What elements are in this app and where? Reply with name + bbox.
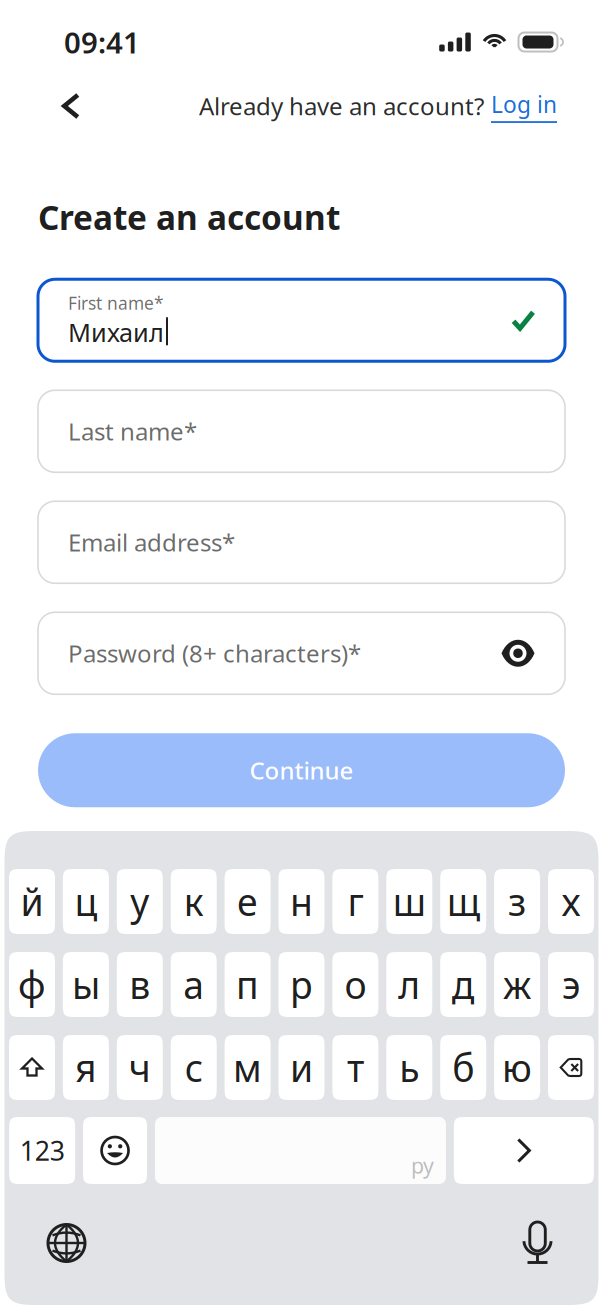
staticText: т [347, 1043, 364, 1092]
staticText: и [290, 1043, 313, 1092]
button[interactable]: ю [494, 1035, 540, 1100]
button[interactable]: л [386, 952, 432, 1017]
staticText: ру [411, 1151, 434, 1180]
button[interactable]: а [171, 952, 217, 1017]
button[interactable]: ж [494, 952, 540, 1017]
staticText: ж [503, 960, 531, 1009]
staticText: Password (8+ characters)* [68, 637, 361, 669]
button[interactable]: д [440, 952, 486, 1017]
staticText: Email address* [68, 526, 235, 558]
staticText: 123 [20, 1133, 65, 1168]
button[interactable]: х [548, 869, 594, 934]
button[interactable]: б [440, 1035, 486, 1100]
staticText: ю [502, 1043, 532, 1092]
button[interactable]: н [278, 869, 324, 934]
button[interactable]: й [9, 869, 55, 934]
staticText: н [290, 877, 313, 926]
button[interactable]: Continue [38, 733, 565, 807]
button[interactable]: з [494, 869, 540, 934]
button[interactable]: е [225, 869, 271, 934]
button[interactable]: э [548, 952, 594, 1017]
staticText: ч [129, 1043, 151, 1092]
button[interactable]: 123 [9, 1117, 75, 1184]
button[interactable]: Next keyboard [37, 1214, 95, 1272]
staticText: ш [393, 877, 426, 926]
button[interactable]: щ [440, 869, 486, 934]
button[interactable]: у [117, 869, 163, 934]
button[interactable]: ы [63, 952, 109, 1017]
staticText: з [508, 877, 526, 926]
staticText: р [290, 960, 313, 1009]
staticText: м [233, 1043, 262, 1092]
staticText: Log in [491, 89, 557, 119]
staticText: а [183, 960, 204, 1009]
staticText: Already have an account? [199, 90, 484, 122]
staticText: л [398, 960, 420, 1009]
staticText: ь [399, 1043, 419, 1092]
staticText: Continue [249, 754, 353, 786]
button[interactable]: м [225, 1035, 271, 1100]
staticText: ф [18, 960, 46, 1009]
staticText: щ [447, 877, 480, 926]
button[interactable]: ь [386, 1035, 432, 1100]
staticText: в [129, 960, 150, 1009]
button[interactable]: в [117, 952, 163, 1017]
staticText: у [130, 877, 149, 926]
button[interactable]: т [332, 1035, 378, 1100]
button[interactable]: п [225, 952, 271, 1017]
button[interactable]: Return [454, 1117, 594, 1184]
button[interactable]: с [171, 1035, 217, 1100]
staticText: е [237, 877, 258, 926]
button[interactable]: Dictation [508, 1214, 566, 1272]
button[interactable]: Space [155, 1117, 446, 1184]
staticText: я [75, 1043, 97, 1092]
button[interactable]: я [63, 1035, 109, 1100]
staticText: д [452, 960, 475, 1009]
button[interactable]: Delete [548, 1035, 594, 1100]
button[interactable]: Back [43, 80, 99, 132]
staticText: с [185, 1043, 203, 1092]
staticText: э [562, 960, 580, 1009]
button[interactable]: г [332, 869, 378, 934]
button[interactable]: ш [386, 869, 432, 934]
button[interactable]: ч [117, 1035, 163, 1100]
staticText: Create an account [38, 195, 340, 239]
staticText: First name* [68, 291, 164, 314]
button[interactable]: и [278, 1035, 324, 1100]
button[interactable]: ц [63, 869, 109, 934]
staticText: ц [74, 877, 97, 926]
staticText: к [184, 877, 204, 926]
button[interactable]: ф [9, 952, 55, 1017]
staticText: ы [72, 960, 100, 1009]
staticText: б [452, 1043, 474, 1092]
staticText: х [561, 877, 580, 926]
staticText: Михаил [68, 315, 164, 349]
staticText: о [344, 960, 366, 1009]
staticText: г [347, 877, 363, 926]
staticText: й [20, 877, 43, 926]
staticText: п [236, 960, 259, 1009]
button[interactable]: о [332, 952, 378, 1017]
button[interactable]: Log in [491, 89, 557, 123]
button[interactable]: Emoji [83, 1117, 147, 1184]
button[interactable]: Shift [9, 1035, 55, 1100]
button[interactable]: к [171, 869, 217, 934]
staticText: 09:41 [64, 22, 140, 61]
staticText: Last name* [68, 415, 197, 447]
button[interactable]: р [278, 952, 324, 1017]
